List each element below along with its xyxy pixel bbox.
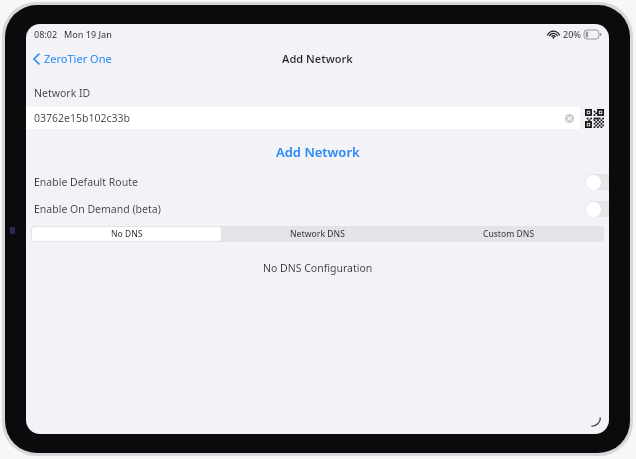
staticText: Enable On Demand (beta) bbox=[34, 202, 161, 216]
button[interactable]: Enable Default Route bbox=[26, 174, 609, 190]
staticText: ZeroTier One bbox=[44, 51, 112, 66]
staticText: No DNS bbox=[111, 228, 143, 240]
staticText: Network ID bbox=[34, 86, 91, 100]
button[interactable]: Clear text bbox=[565, 114, 574, 123]
staticText: Add Network bbox=[276, 143, 360, 161]
staticText: 03762e15b102c33b bbox=[34, 111, 130, 125]
button[interactable]: 03762e15b102c33b bbox=[26, 107, 580, 129]
staticText: Network DNS bbox=[290, 228, 345, 240]
button[interactable]: No DNS bbox=[32, 227, 221, 241]
staticText: No DNS Configuration bbox=[263, 261, 373, 275]
button[interactable]: Enable On Demand (beta) bbox=[26, 201, 609, 217]
button[interactable]: Custom DNS bbox=[414, 227, 603, 241]
staticText: Add Network bbox=[282, 51, 353, 66]
button[interactable]: Scan QR code bbox=[585, 109, 604, 128]
other: Enable On Demand (beta) bbox=[585, 201, 609, 217]
staticText: Enable Default Route bbox=[34, 175, 138, 189]
staticText: 08:02 bbox=[34, 28, 58, 40]
other: Enable Default Route bbox=[585, 174, 609, 190]
staticText: 20% bbox=[563, 28, 581, 40]
button[interactable]: Add Network bbox=[26, 141, 609, 163]
staticText: Custom DNS bbox=[483, 228, 535, 240]
button[interactable]: Network DNS bbox=[223, 227, 412, 241]
button[interactable]: ZeroTier One bbox=[31, 49, 114, 68]
staticText: Mon 19 Jan bbox=[64, 28, 112, 40]
